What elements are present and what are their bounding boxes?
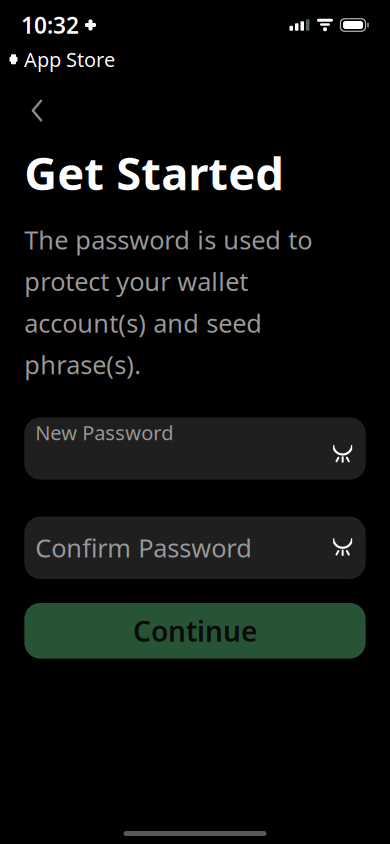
button[interactable]: App Store (9, 44, 115, 75)
button[interactable]: Back (15, 89, 59, 133)
staticText: New Password (35, 419, 173, 446)
staticText: The password is used to protect your wal… (24, 223, 312, 381)
staticText: 10:32 (21, 10, 79, 40)
button[interactable]: Confirm Password (24, 517, 366, 579)
staticText: Confirm Password (35, 531, 252, 565)
staticText: Get Started (24, 143, 284, 203)
button[interactable]: New Password (24, 417, 366, 480)
staticText: App Store (24, 46, 115, 73)
staticText: Continue (133, 612, 257, 649)
button[interactable]: Continue (24, 603, 366, 659)
